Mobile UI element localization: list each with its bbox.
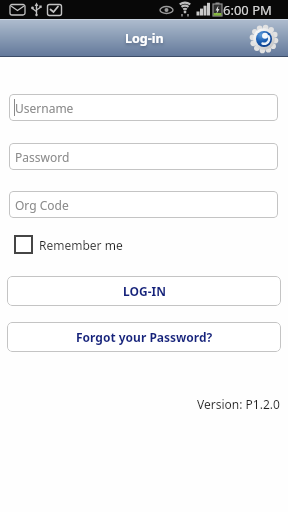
staticText: Username bbox=[15, 100, 74, 116]
staticText: LOG-IN bbox=[123, 283, 166, 299]
staticText: Version: P1.2.0 bbox=[197, 396, 280, 412]
button[interactable] bbox=[249, 24, 279, 54]
staticText: Remember me bbox=[39, 237, 123, 253]
staticText: Org Code bbox=[15, 197, 69, 213]
staticText: Forgot your Password? bbox=[76, 329, 213, 345]
staticText: 6:00 PM bbox=[223, 1, 272, 19]
button[interactable]: Org Code bbox=[9, 191, 278, 218]
staticText: Password bbox=[15, 149, 70, 165]
button[interactable] bbox=[14, 235, 33, 254]
staticText: Log-in bbox=[125, 30, 164, 47]
button[interactable]: LOG-IN bbox=[7, 276, 281, 306]
button[interactable]: Username bbox=[9, 94, 278, 121]
button[interactable]: Password bbox=[9, 143, 278, 170]
button[interactable]: Forgot your Password? bbox=[7, 322, 281, 352]
